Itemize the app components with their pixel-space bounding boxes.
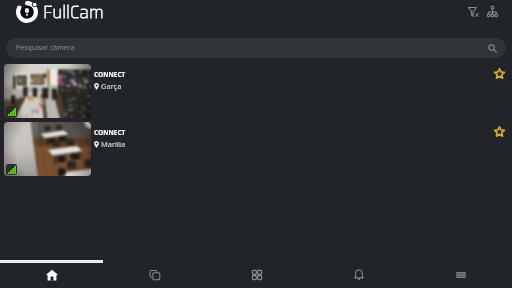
- staticText: CONNECT: [94, 128, 126, 137]
- button[interactable]: Notifications: [308, 263, 410, 286]
- button[interactable]: CONNECT: [0, 122, 512, 176]
- button[interactable]: Favorite: [490, 64, 509, 83]
- button[interactable]: Pesquisar câmera: [6, 38, 506, 58]
- button[interactable]: Favorite: [490, 122, 509, 141]
- button[interactable]: Home: [0, 263, 103, 286]
- staticText: FullCam: [43, 0, 104, 22]
- button[interactable]: Grid view: [206, 263, 308, 286]
- staticText: CONNECT: [94, 70, 126, 79]
- staticText: Marília: [101, 139, 126, 149]
- button[interactable]: Menu: [410, 263, 512, 286]
- button[interactable]: CONNECT: [0, 64, 512, 118]
- button[interactable]: Multiview: [103, 263, 206, 286]
- staticText: Garça: [101, 81, 122, 91]
- button[interactable]: Clear filter: [459, 1, 481, 23]
- button[interactable]: Camera groups: [481, 1, 503, 23]
- staticText: Pesquisar câmera: [16, 43, 75, 53]
